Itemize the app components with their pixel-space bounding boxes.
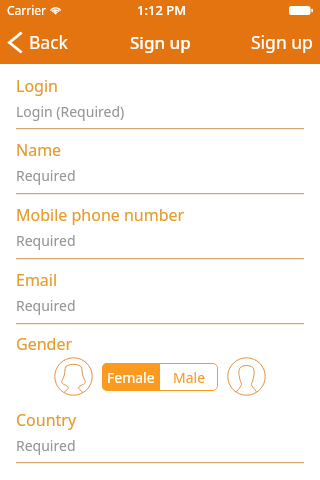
button[interactable]: Select male	[227, 357, 266, 396]
staticText: Mobile phone number	[16, 204, 185, 226]
button[interactable]: Back	[0, 24, 78, 60]
staticText: Login	[16, 75, 58, 97]
staticText: Carrier	[7, 2, 47, 18]
button[interactable]: Male	[160, 363, 218, 391]
staticText: Required	[16, 166, 76, 185]
button[interactable]: Email	[0, 258, 320, 324]
staticText: Name	[16, 139, 62, 161]
button[interactable]: Mobile phone number	[0, 193, 320, 259]
button[interactable]: Country	[0, 398, 320, 463]
staticText: Required	[16, 231, 76, 250]
staticText: 1:12 PM	[137, 1, 187, 19]
staticText: Email	[16, 269, 58, 291]
staticText: Gender	[16, 333, 73, 355]
staticText: Login (Required)	[16, 102, 125, 121]
button[interactable]: Sign up	[241, 22, 320, 62]
staticText: Required	[16, 296, 76, 315]
staticText: Sign up	[130, 31, 191, 54]
button[interactable]: Select female	[54, 357, 93, 396]
button[interactable]: Login	[0, 64, 320, 129]
staticText: Country	[16, 409, 77, 431]
staticText: Back	[29, 30, 68, 54]
button[interactable]: Female	[102, 363, 160, 391]
button[interactable]: Name	[0, 128, 320, 194]
staticText: Female	[107, 368, 155, 387]
staticText: Male	[173, 368, 206, 387]
staticText: Required	[16, 436, 76, 455]
